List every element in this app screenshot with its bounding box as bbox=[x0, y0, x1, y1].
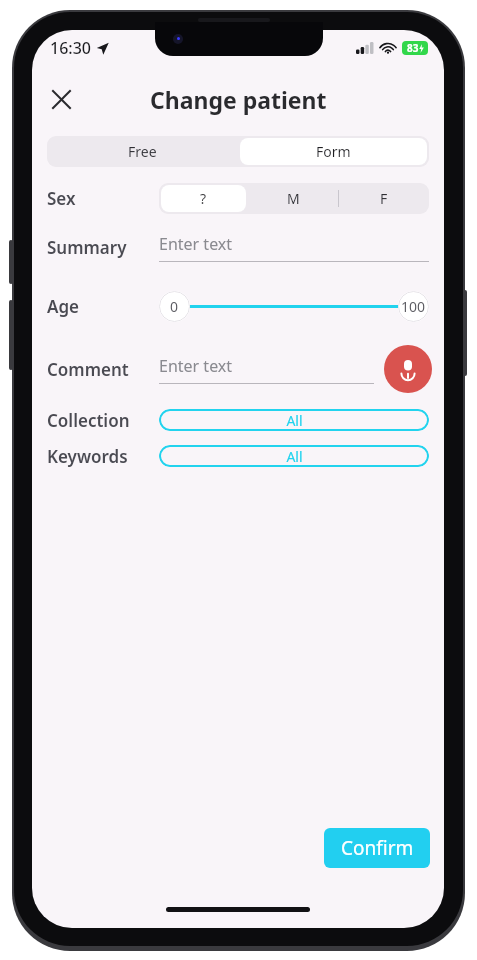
button[interactable]: Close bbox=[40, 78, 82, 120]
staticText: 83 bbox=[407, 41, 419, 55]
button[interactable]: Form bbox=[240, 138, 427, 165]
staticText: 100 bbox=[401, 297, 426, 316]
button[interactable]: Confirm bbox=[324, 828, 430, 868]
button[interactable]: Record voice comment bbox=[384, 345, 432, 393]
button[interactable]: Enter text bbox=[159, 355, 374, 384]
staticText: All bbox=[286, 447, 303, 466]
button[interactable]: M bbox=[248, 183, 338, 214]
button[interactable]: Enter text bbox=[159, 233, 429, 262]
staticText: M bbox=[287, 189, 300, 208]
staticText: Keywords bbox=[47, 445, 159, 468]
staticText: Confirm bbox=[341, 835, 414, 861]
staticText: Collection bbox=[47, 409, 159, 432]
staticText: 16:30 bbox=[50, 37, 91, 59]
staticText: Change patient bbox=[150, 84, 327, 115]
staticText: ? bbox=[200, 189, 207, 208]
staticText: Summary bbox=[47, 236, 159, 259]
staticText: Free bbox=[128, 142, 157, 161]
staticText: Enter text bbox=[159, 233, 233, 255]
staticText: F bbox=[380, 189, 388, 208]
staticText: Sex bbox=[47, 187, 159, 210]
staticText: Enter text bbox=[159, 355, 233, 377]
staticText: Age bbox=[47, 295, 159, 318]
button[interactable]: Age range slider bbox=[159, 289, 429, 323]
button[interactable]: F bbox=[339, 183, 429, 214]
staticText: Comment bbox=[47, 358, 159, 381]
staticText: All bbox=[286, 411, 303, 430]
button[interactable]: Free bbox=[47, 136, 238, 167]
button[interactable]: All bbox=[159, 409, 429, 431]
button[interactable]: ? bbox=[161, 185, 246, 212]
button[interactable]: All bbox=[159, 445, 429, 467]
staticText: 0 bbox=[170, 297, 179, 316]
staticText: Form bbox=[316, 142, 351, 161]
